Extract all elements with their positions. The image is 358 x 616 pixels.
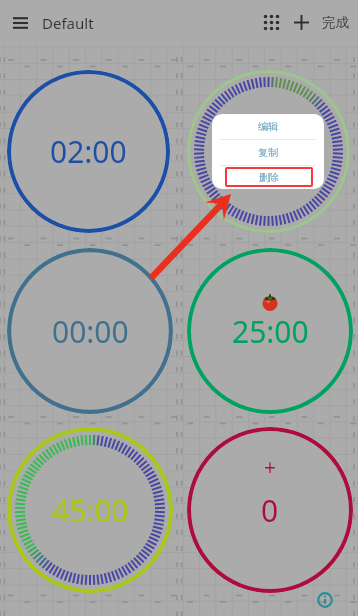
staticText: 0 bbox=[261, 490, 279, 531]
button[interactable]: 编辑 bbox=[212, 114, 324, 139]
button[interactable]: 25:00 bbox=[187, 248, 353, 414]
button[interactable]: 45:00 bbox=[7, 427, 173, 593]
staticText: + bbox=[264, 453, 277, 482]
button[interactable] bbox=[187, 70, 350, 233]
staticText: 复制 bbox=[258, 146, 278, 159]
staticText: 02:00 bbox=[50, 131, 127, 172]
button[interactable]: Add bbox=[286, 7, 316, 37]
button[interactable]: 完成 bbox=[318, 8, 352, 36]
button[interactable]: Info bbox=[312, 587, 338, 613]
button[interactable]: 复制 bbox=[212, 140, 324, 165]
button[interactable]: 删除 bbox=[225, 167, 313, 187]
staticText: 完成 bbox=[322, 14, 349, 31]
button[interactable]: Grid view bbox=[256, 7, 286, 37]
button[interactable]: 00:00 bbox=[7, 248, 173, 414]
staticText: 25:00 bbox=[232, 311, 309, 352]
button[interactable]: + bbox=[187, 427, 353, 593]
staticText: Default bbox=[42, 13, 94, 33]
staticText: 45:00 bbox=[52, 490, 129, 531]
button[interactable]: Menu bbox=[6, 8, 35, 37]
staticText: 删除 bbox=[259, 171, 279, 184]
staticText: 编辑 bbox=[258, 120, 278, 133]
staticText: 00:00 bbox=[52, 311, 129, 352]
button[interactable]: 02:00 bbox=[7, 70, 170, 233]
